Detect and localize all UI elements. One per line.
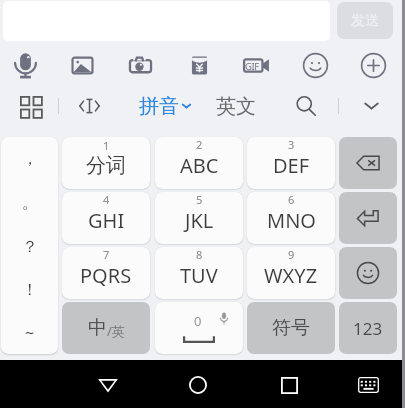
button[interactable]: Red packet	[178, 44, 220, 86]
staticText: MNO	[267, 207, 316, 234]
staticText: PQRS	[80, 262, 132, 289]
staticText: WXYZ	[264, 262, 318, 289]
button[interactable]: ，	[1, 137, 58, 181]
button[interactable]: Switch input method	[344, 360, 392, 408]
staticText: 6	[288, 192, 295, 207]
staticText: 英文	[216, 94, 256, 119]
button[interactable]: 9	[247, 247, 335, 299]
button[interactable]: 拼音	[133, 86, 197, 126]
staticText: 符号	[272, 316, 310, 340]
button[interactable]: 6	[247, 192, 335, 244]
button[interactable]: Camera	[119, 44, 161, 86]
button[interactable]: 5	[155, 192, 243, 244]
button[interactable]: Emoji	[294, 44, 336, 86]
button[interactable]: Move cursor	[68, 86, 110, 126]
button[interactable]: Back	[84, 360, 132, 408]
button[interactable]: 。	[1, 181, 58, 225]
button[interactable]: Backspace	[339, 137, 397, 189]
staticText: 8	[196, 247, 203, 262]
staticText: 3	[288, 137, 295, 152]
button[interactable]: 英文	[210, 86, 262, 126]
button[interactable]: 0	[155, 302, 243, 354]
staticText: 分词	[86, 153, 126, 178]
button[interactable]: Enter	[339, 192, 397, 244]
staticText: 。	[22, 193, 38, 213]
staticText: 5	[196, 192, 203, 207]
staticText: 发送	[351, 12, 379, 30]
button[interactable]: ~	[1, 311, 58, 354]
button[interactable]: Voice input	[4, 44, 46, 86]
staticText: 拼音	[139, 94, 179, 119]
staticText: ！	[22, 280, 38, 300]
staticText: ？	[22, 237, 38, 257]
button[interactable]: 7	[62, 247, 150, 299]
button[interactable]: Recent apps	[265, 360, 313, 408]
button[interactable]: ！	[1, 268, 58, 311]
staticText: 1	[103, 138, 110, 153]
button[interactable]: ？	[1, 225, 58, 268]
button[interactable]: 2	[155, 137, 243, 189]
button[interactable]: Search	[285, 86, 327, 126]
button[interactable]: 符号	[247, 302, 335, 354]
button[interactable]: Home	[174, 360, 222, 408]
button[interactable]: 123	[339, 302, 397, 354]
button[interactable]: 发送	[337, 2, 393, 39]
button[interactable]: 中	[62, 302, 150, 354]
staticText: GIF	[245, 60, 259, 73]
staticText: ABC	[180, 152, 219, 179]
button[interactable]: Hide keyboard	[350, 86, 392, 126]
button[interactable]: Keyboard layouts	[9, 86, 51, 126]
staticText: /英	[107, 322, 125, 340]
button[interactable]: 8	[155, 247, 243, 299]
button[interactable]: Gallery	[61, 44, 103, 86]
staticText: DEF	[273, 152, 310, 179]
button[interactable]: 3	[247, 137, 335, 189]
staticText: GHI	[88, 207, 125, 234]
staticText: 123	[353, 317, 383, 340]
staticText: 0	[194, 312, 202, 330]
staticText: JKL	[185, 207, 214, 234]
staticText: TUV	[180, 262, 218, 289]
staticText: 2	[196, 137, 203, 152]
button[interactable]: More	[352, 44, 394, 86]
button[interactable]: 4	[62, 192, 150, 244]
staticText: 9	[288, 247, 295, 262]
staticText: ~	[25, 322, 35, 344]
staticText: ，	[22, 149, 38, 169]
button[interactable]: Emoji	[339, 247, 397, 299]
button[interactable]: 1	[62, 137, 150, 189]
button[interactable]: GIF	[235, 44, 277, 86]
staticText: 中	[88, 316, 107, 340]
staticText: 4	[103, 192, 110, 207]
staticText: 7	[103, 247, 110, 262]
